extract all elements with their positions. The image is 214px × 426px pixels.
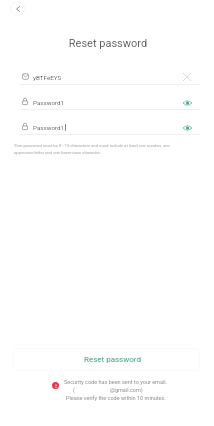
- staticText: @gmail.com): [110, 387, 143, 393]
- button[interactable]: [20, 91, 200, 116]
- staticText: Password1: [33, 124, 65, 131]
- staticText: (: [73, 387, 75, 393]
- button[interactable]: Reset password: [13, 348, 200, 371]
- button[interactable]: Clear: [181, 71, 193, 83]
- staticText: Reset password: [1, 37, 214, 50]
- staticText: Security code has been sent to your emai…: [64, 379, 168, 385]
- staticText: Please verify the code within 10 minutes…: [66, 395, 166, 401]
- button[interactable]: [20, 66, 200, 91]
- staticText: Reset password: [84, 355, 141, 364]
- button[interactable]: Show password: [181, 96, 193, 108]
- button[interactable]: Show password: [181, 121, 193, 133]
- staticText: Password1: [33, 99, 65, 106]
- button[interactable]: [20, 116, 200, 141]
- staticText: yBTFeEYS: [33, 74, 62, 81]
- button[interactable]: Back: [10, 1, 25, 16]
- staticText: Your password must be 8 - 15 characters …: [14, 143, 171, 155]
